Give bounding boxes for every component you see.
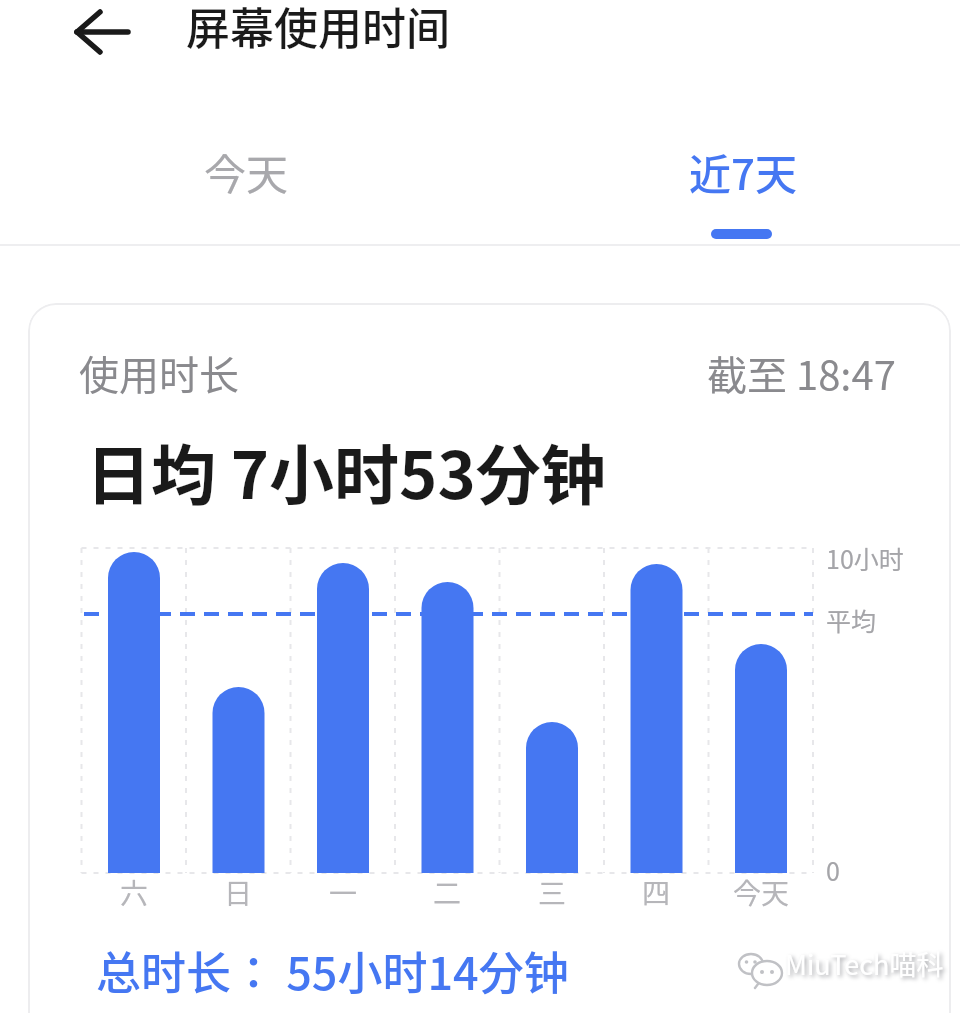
staticText: 总时长： 55小时14分钟 xyxy=(96,938,569,1003)
staticText: 三 xyxy=(538,872,567,913)
staticText: 平均 xyxy=(826,602,877,638)
staticText: 使用时长 xyxy=(79,344,239,402)
staticText: 屏幕使用时间 xyxy=(186,0,450,58)
staticText: 四 xyxy=(642,872,671,913)
staticText: MiuTech喵科 xyxy=(785,944,944,983)
staticText: 一 xyxy=(329,872,358,913)
staticText: 六 xyxy=(120,872,149,913)
staticText: 今天 xyxy=(733,872,790,913)
staticText: 日 xyxy=(224,872,253,913)
staticText: 10小时 xyxy=(826,540,904,576)
staticText: 0 xyxy=(826,852,840,888)
staticText: 二 xyxy=(433,872,462,913)
button[interactable]: 近7天 xyxy=(643,126,843,216)
button[interactable] xyxy=(62,8,142,58)
staticText: 近7天 xyxy=(689,141,797,202)
staticText: 截至 18:47 xyxy=(707,344,896,402)
staticText: 日均 7小时53分钟 xyxy=(86,424,606,518)
staticText: 今天 xyxy=(204,141,289,202)
button[interactable]: 今天 xyxy=(146,126,346,216)
